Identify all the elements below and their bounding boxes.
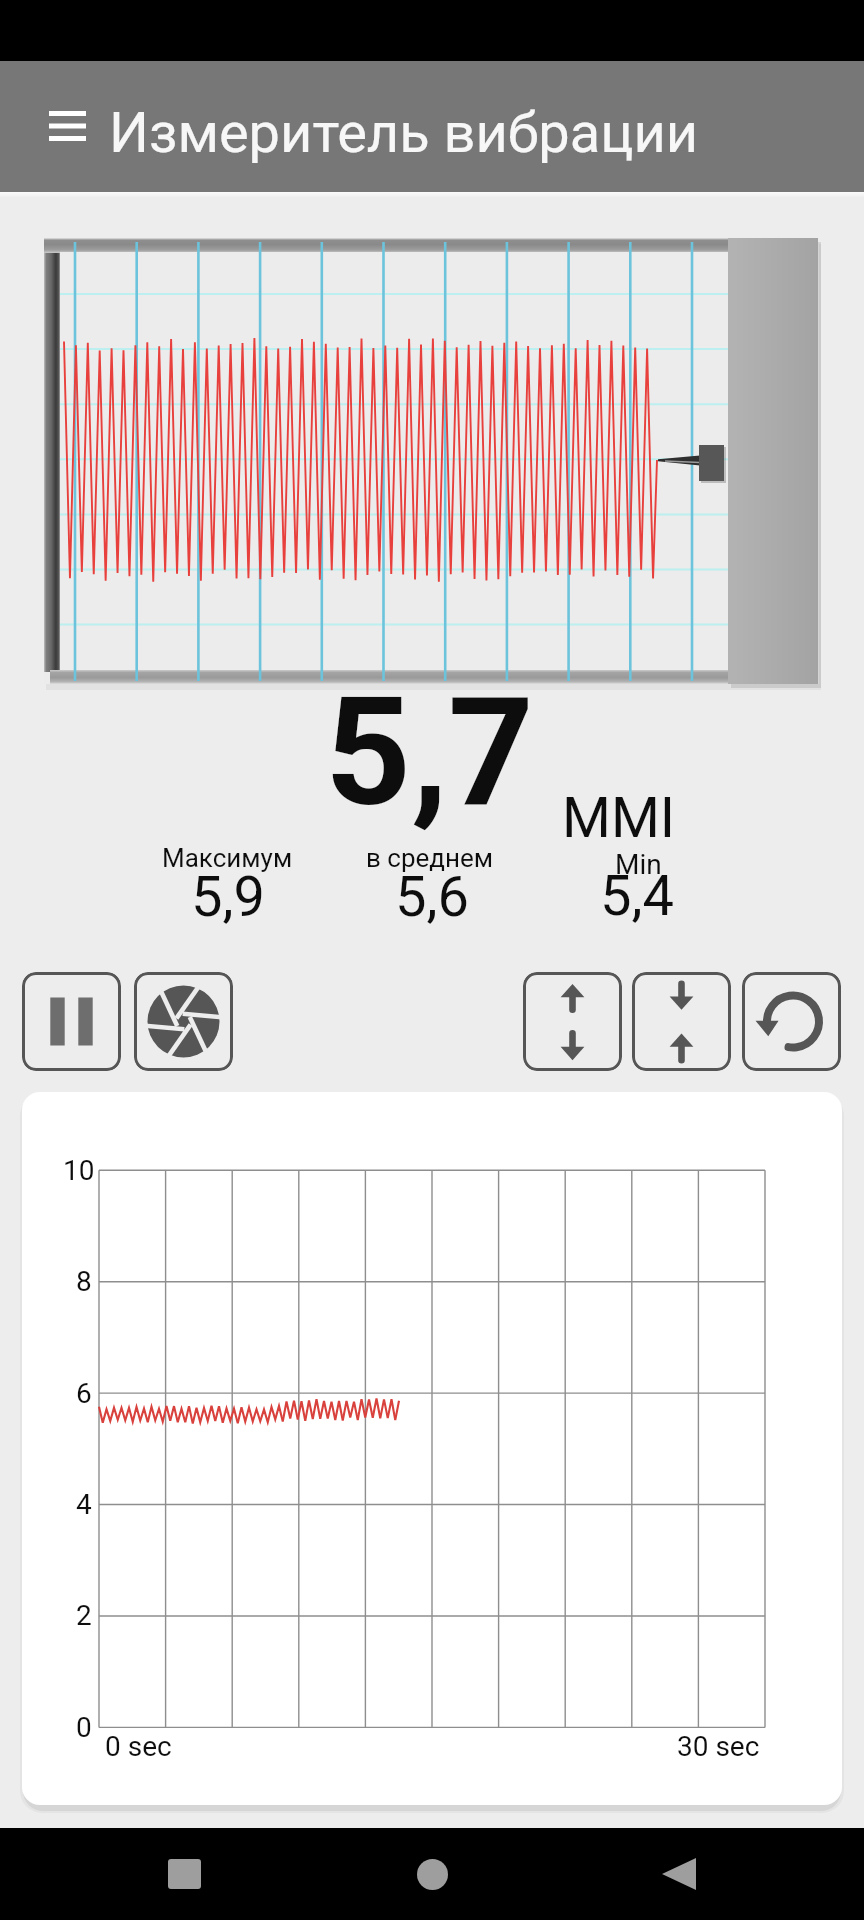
staticText: MMI: [562, 785, 676, 851]
staticText: 5,4: [600, 863, 674, 929]
button[interactable]: Expand scale: [523, 972, 622, 1071]
staticText: 0 sec: [105, 1730, 172, 1763]
staticText: 30 sec: [677, 1730, 760, 1763]
staticText: 8: [76, 1265, 92, 1298]
staticText: 0: [76, 1711, 92, 1744]
button[interactable]: Capture snapshot: [134, 972, 233, 1071]
staticText: 5,7: [325, 665, 535, 841]
staticText: в среднем: [366, 843, 494, 873]
button[interactable]: Shrink scale: [632, 972, 731, 1071]
staticText: 4: [76, 1488, 92, 1521]
staticText: 2: [76, 1599, 92, 1632]
button[interactable]: Recent apps: [136, 1828, 232, 1920]
staticText: 10: [63, 1154, 95, 1187]
staticText: Измеритель вибрации: [109, 100, 699, 166]
button[interactable]: Reset: [742, 972, 841, 1071]
staticText: 5,9: [191, 864, 265, 930]
button[interactable]: Home: [384, 1828, 480, 1920]
staticText: 5,6: [395, 864, 469, 930]
staticText: 6: [76, 1377, 92, 1410]
button[interactable]: Open navigation menu: [30, 89, 104, 163]
staticText: Максимум: [162, 843, 293, 873]
staticText: Min: [615, 848, 662, 881]
button[interactable]: Pause: [22, 972, 121, 1071]
button[interactable]: Back: [631, 1828, 727, 1920]
